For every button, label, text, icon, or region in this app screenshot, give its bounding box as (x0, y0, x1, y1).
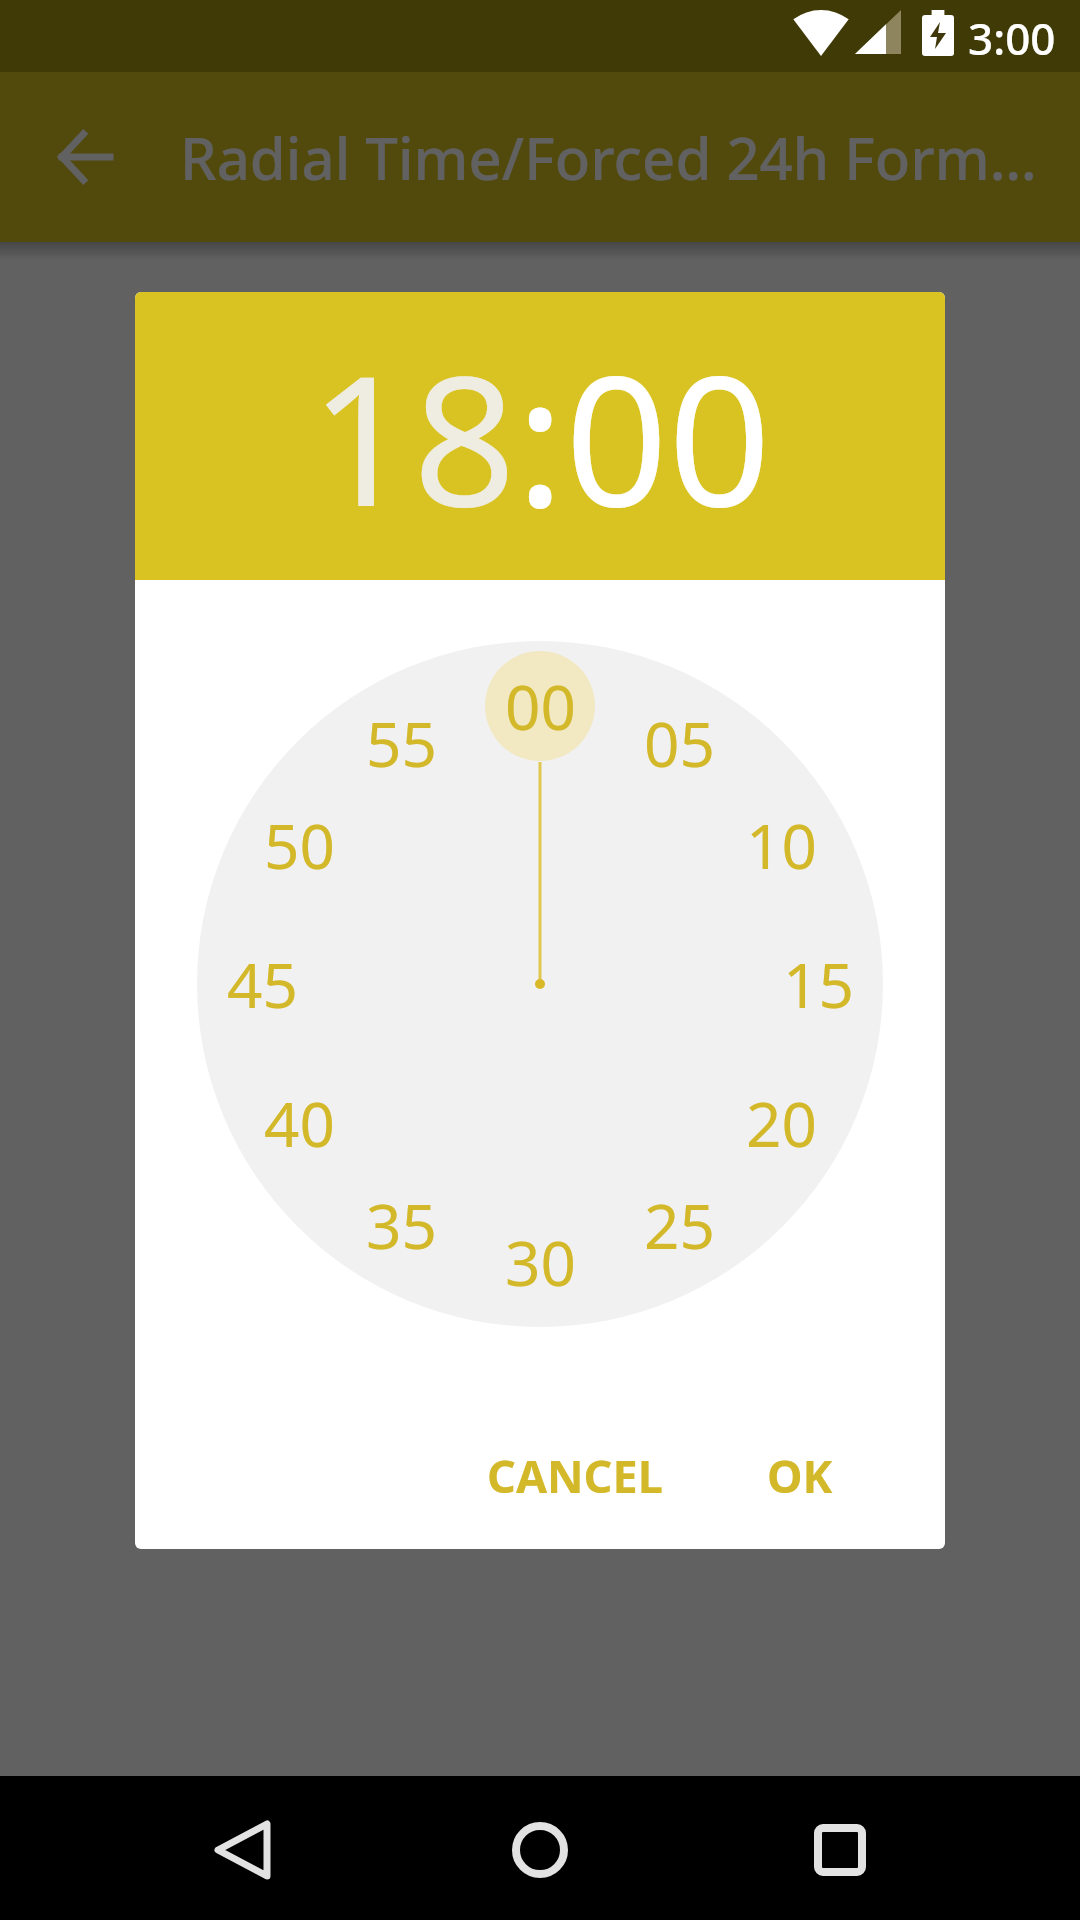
button[interactable] (205, 1812, 281, 1888)
button[interactable]: 20 (711, 1078, 851, 1168)
button[interactable]: 55 (331, 698, 471, 788)
button[interactable]: 25 (609, 1180, 749, 1270)
staticText: CANCEL (487, 1445, 663, 1506)
staticText: 45 (227, 942, 298, 1026)
staticText: 55 (366, 701, 437, 785)
button[interactable] (502, 1812, 578, 1888)
staticText: 00 (565, 314, 771, 559)
staticText: Radial Time/Forced 24h Form… (180, 118, 1040, 197)
staticText: 20 (746, 1081, 817, 1165)
staticText: 15 (783, 942, 854, 1026)
staticText: 30 (505, 1220, 576, 1304)
button[interactable]: 30 (470, 1217, 610, 1307)
button[interactable]: 15 (748, 939, 888, 1029)
staticText: : (516, 314, 565, 559)
staticText: 05 (644, 701, 715, 785)
staticText: 3:00 (968, 8, 1056, 68)
button[interactable]: 35 (331, 1180, 471, 1270)
staticText: 40 (264, 1081, 335, 1165)
staticText: 50 (264, 803, 335, 887)
staticText: 00 (505, 664, 576, 748)
button[interactable]: 40 (229, 1078, 369, 1168)
button[interactable]: 00 (470, 661, 610, 751)
button[interactable] (802, 1812, 878, 1888)
button[interactable] (38, 109, 134, 205)
button[interactable]: OK (727, 1427, 873, 1523)
staticText: 10 (746, 803, 817, 887)
staticText: 35 (366, 1183, 437, 1267)
staticText: 18 (310, 314, 516, 559)
button[interactable]: 05 (609, 698, 749, 788)
button[interactable]: 50 (229, 800, 369, 890)
button[interactable]: 45 (192, 939, 332, 1029)
button[interactable]: CANCEL (487, 1427, 663, 1523)
staticText: 25 (644, 1183, 715, 1267)
button[interactable]: 10 (711, 800, 851, 890)
staticText: OK (767, 1445, 833, 1506)
